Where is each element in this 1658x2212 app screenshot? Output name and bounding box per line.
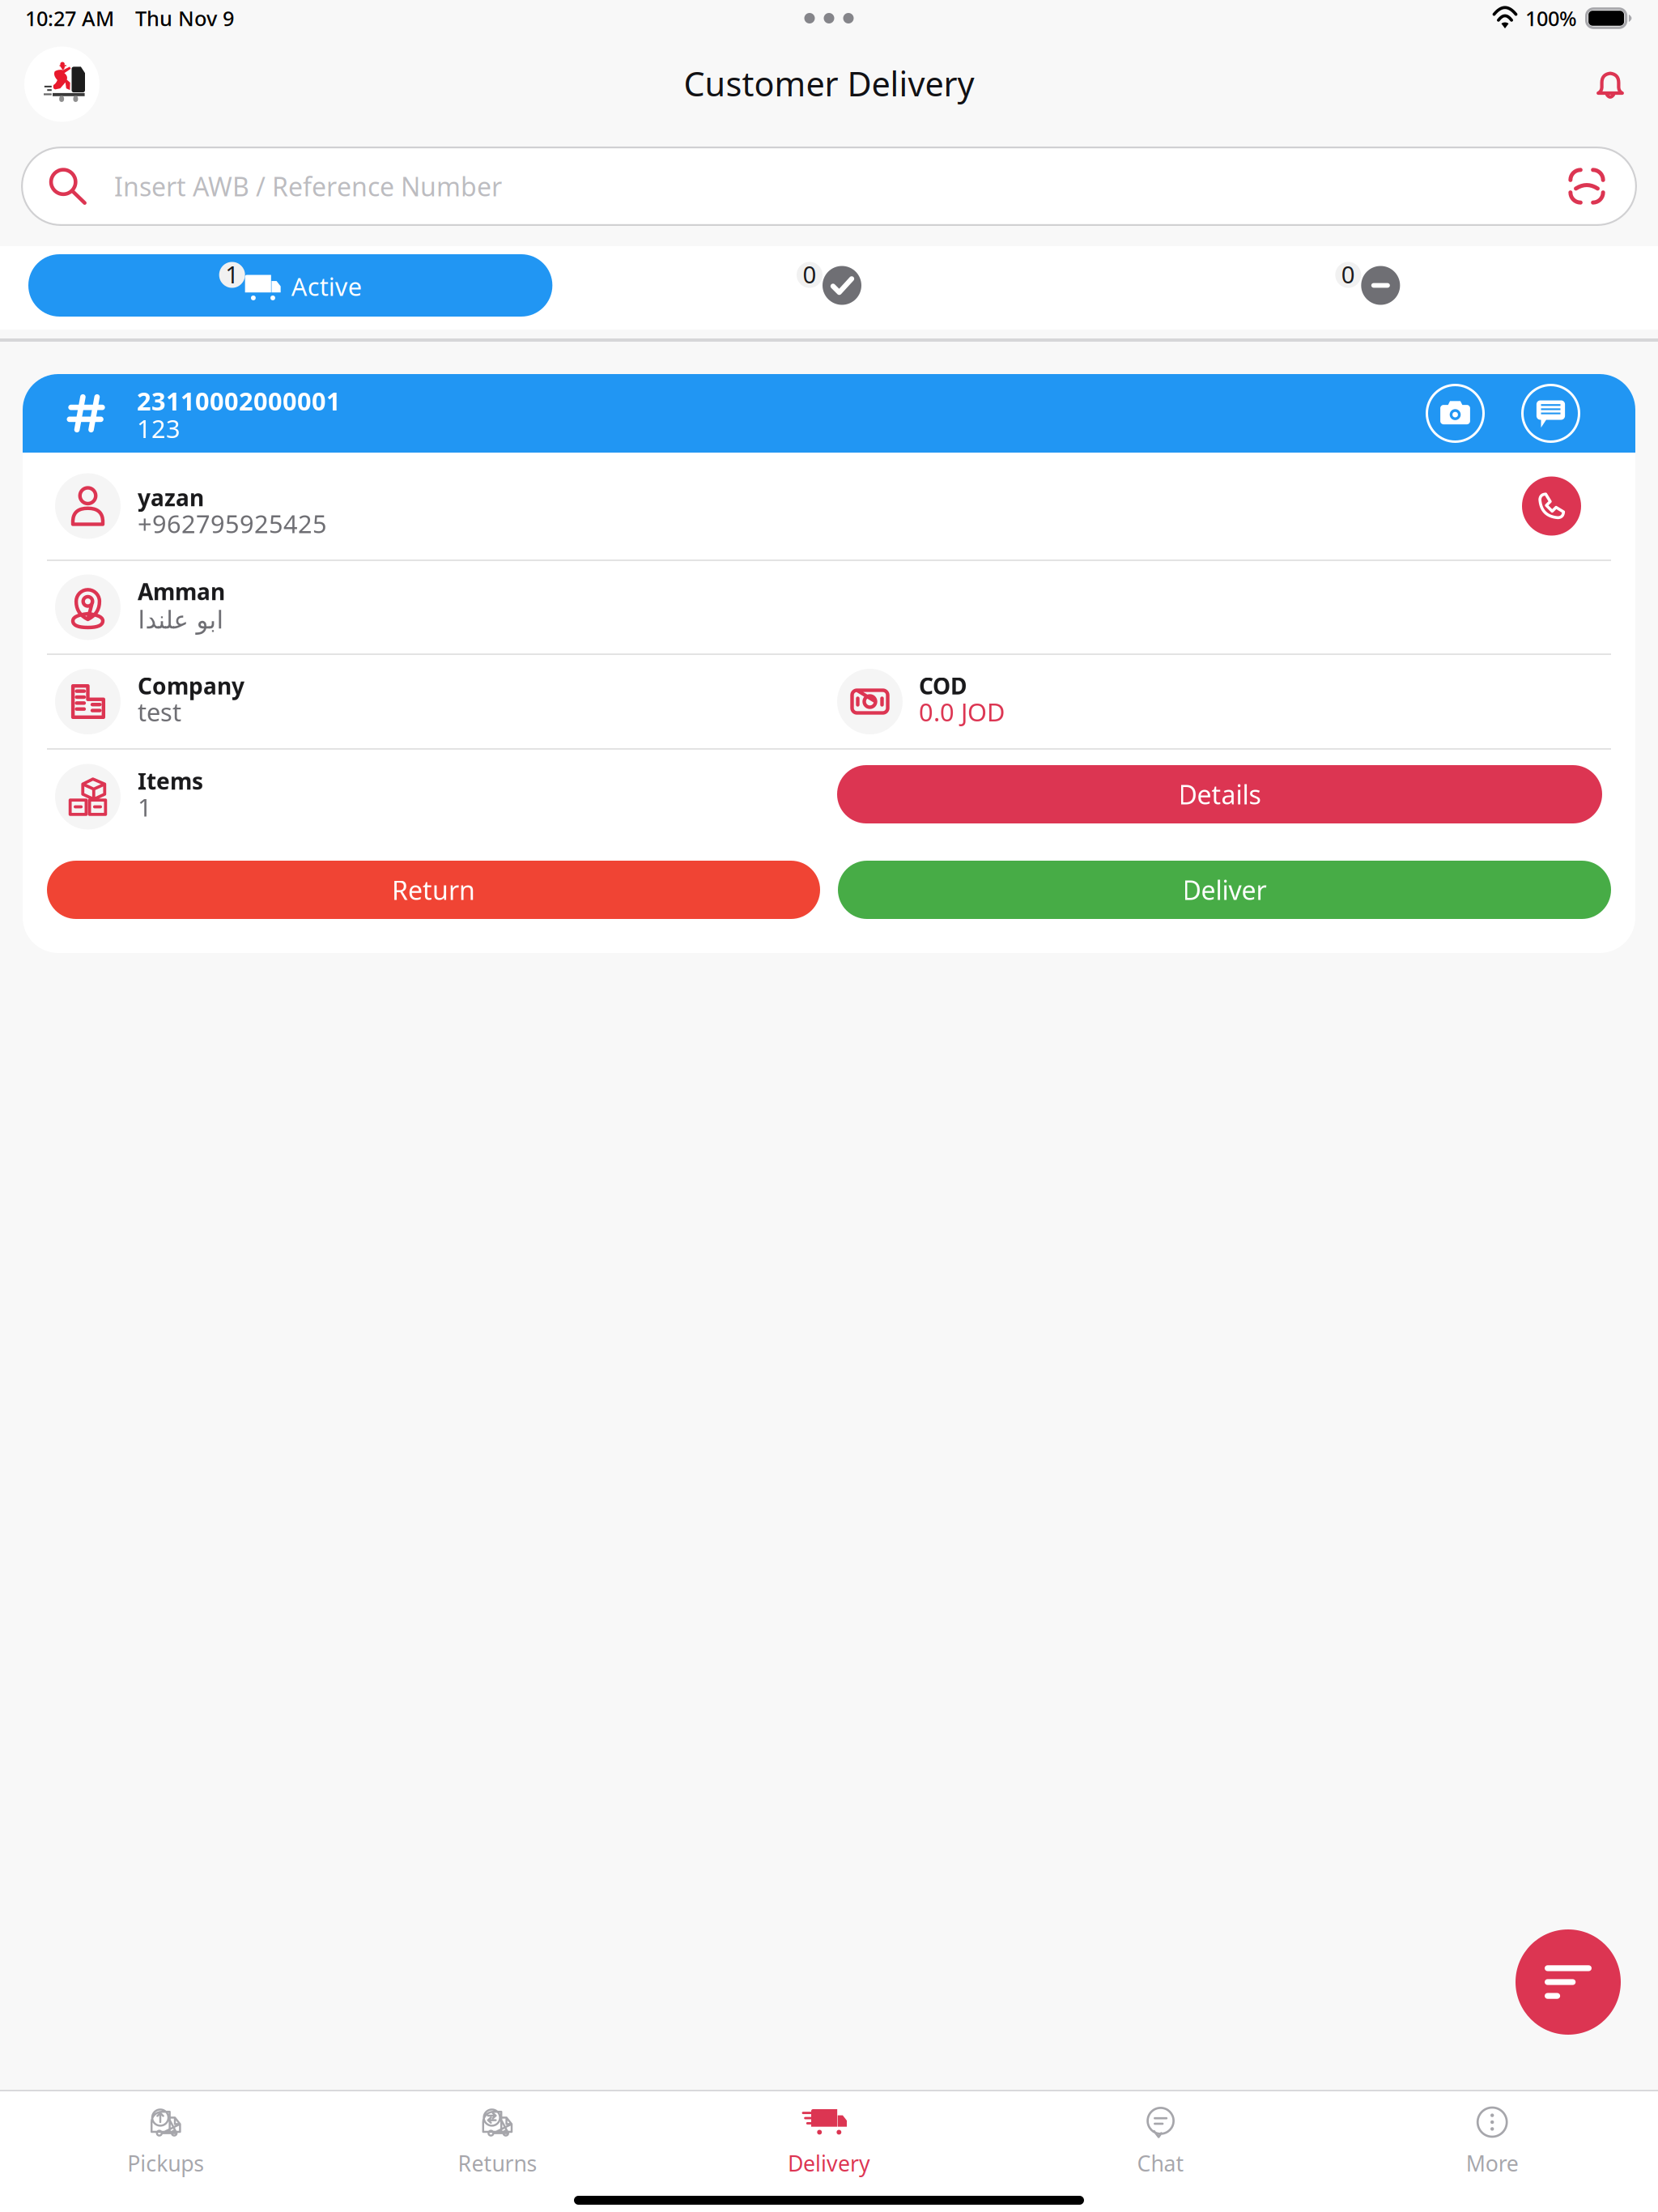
staticText: Returns [458,2149,537,2178]
button[interactable]: Returns [332,2091,663,2193]
button[interactable]: Delivery [663,2091,995,2193]
staticText: Amman [138,576,225,606]
button[interactable]: Notifications [1594,69,1626,101]
button[interactable]: More [1326,2091,1658,2193]
staticText: Pickups [127,2149,204,2178]
staticText: More [1466,2149,1519,2178]
staticText: ابو علندا [138,606,223,634]
staticText: Details [1178,777,1261,812]
staticText: Company [138,671,244,701]
staticText: 0 [1341,258,1355,290]
button[interactable]: 1 [21,254,560,317]
staticText: Chat [1137,2149,1184,2178]
button[interactable]: Sort and filter [1516,1929,1621,2035]
staticText: 10:27 AM [25,5,114,32]
staticText: Thu Nov 9 [135,5,234,32]
button[interactable]: Insert AWB / Reference Number [21,147,1637,226]
staticText: 1 [225,258,239,290]
button[interactable]: 0 [560,254,1098,317]
staticText: COD [919,671,967,701]
button[interactable]: Call customer [1522,476,1581,536]
button[interactable]: Open menu [24,47,100,122]
button[interactable]: Pickups [0,2091,332,2193]
button[interactable]: Details [837,768,1602,826]
staticText: 0 [803,258,816,290]
button[interactable]: Return [47,861,820,919]
staticText: Return [392,873,475,907]
staticText: test [138,695,181,728]
button[interactable]: 0 [1098,254,1637,317]
staticText: Delivery [788,2149,870,2178]
staticText: 23110002000001 [137,384,341,417]
button[interactable]: Deliver [838,861,1611,919]
staticText: Insert AWB / Reference Number [114,169,502,203]
staticText: 123 [137,412,181,445]
staticText: Items [138,766,203,796]
button[interactable]: Chat [995,2091,1326,2193]
staticText: Active [291,270,362,303]
staticText: +962795925425 [138,507,327,540]
button[interactable]: Messages [1521,384,1580,443]
staticText: 0.0 JOD [919,695,1005,728]
staticText: Deliver [1182,873,1267,907]
staticText: 1 [138,790,152,823]
button[interactable]: Take photo [1426,384,1485,443]
staticText: Customer Delivery [684,61,974,106]
staticText: 100% [1525,5,1577,32]
staticText: yazan [138,482,204,513]
